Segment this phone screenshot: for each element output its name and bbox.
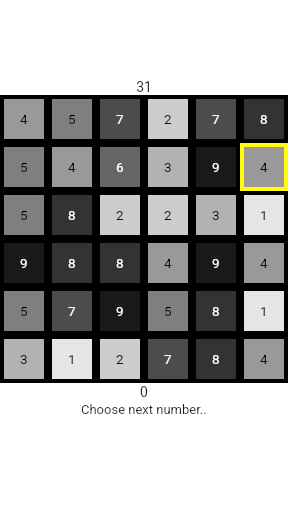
staticText: 9 [212, 159, 220, 175]
staticText: 7 [68, 303, 76, 319]
staticText: 7 [212, 111, 220, 127]
button[interactable]: 2 [144, 191, 192, 239]
staticText: 4 [260, 351, 268, 367]
staticText: 3 [212, 207, 220, 223]
button[interactable]: 2 [144, 95, 192, 143]
button[interactable]: 5 [48, 95, 96, 143]
button[interactable]: 1 [240, 191, 288, 239]
button[interactable]: 2 [96, 191, 144, 239]
button[interactable]: 8 [48, 191, 96, 239]
staticText: 4 [164, 255, 172, 271]
staticText: 2 [164, 111, 172, 127]
staticText: 8 [260, 111, 268, 127]
staticText: 2 [116, 351, 124, 367]
button[interactable]: 5 [144, 287, 192, 335]
staticText: 5 [164, 303, 172, 319]
button[interactable]: 4 [48, 143, 96, 191]
staticText: 2 [116, 207, 124, 223]
button[interactable]: 7 [96, 95, 144, 143]
staticText: 31 [136, 79, 152, 95]
staticText: 4 [20, 111, 28, 127]
button[interactable]: 8 [192, 335, 240, 383]
button[interactable]: 8 [48, 239, 96, 287]
staticText: 3 [164, 159, 172, 175]
staticText: 9 [212, 255, 220, 271]
button[interactable]: 7 [144, 335, 192, 383]
staticText: 6 [116, 159, 124, 175]
staticText: 5 [20, 159, 28, 175]
button[interactable]: 9 [192, 239, 240, 287]
staticText: 9 [116, 303, 124, 319]
button[interactable]: 5 [0, 143, 48, 191]
button[interactable]: 7 [192, 95, 240, 143]
staticText: 8 [212, 303, 220, 319]
button[interactable]: 1 [48, 335, 96, 383]
staticText: 7 [164, 351, 172, 367]
staticText: 5 [20, 207, 28, 223]
staticText: 2 [164, 207, 172, 223]
staticText: 9 [20, 255, 28, 271]
staticText: 8 [116, 255, 124, 271]
staticText: 5 [20, 303, 28, 319]
staticText: 4 [260, 159, 268, 175]
staticText: 4 [260, 255, 268, 271]
staticText: 1 [260, 303, 268, 319]
button[interactable]: 3 [192, 191, 240, 239]
button[interactable]: 4 [240, 239, 288, 287]
button[interactable]: 3 [0, 335, 48, 383]
button[interactable]: 7 [48, 287, 96, 335]
button[interactable]: 9 [0, 239, 48, 287]
button[interactable]: 3 [144, 143, 192, 191]
button[interactable]: 5 [0, 191, 48, 239]
button[interactable]: 6 [96, 143, 144, 191]
staticText: 3 [20, 351, 28, 367]
staticText: 4 [68, 159, 76, 175]
staticText: 8 [68, 207, 76, 223]
staticText: 8 [212, 351, 220, 367]
button[interactable]: 5 [0, 287, 48, 335]
button[interactable]: 4 [240, 143, 288, 191]
button[interactable]: 4 [240, 335, 288, 383]
button[interactable]: 1 [240, 287, 288, 335]
staticText: 7 [116, 111, 124, 127]
button[interactable]: 8 [96, 239, 144, 287]
button[interactable]: 9 [192, 143, 240, 191]
button[interactable]: 4 [0, 95, 48, 143]
button[interactable]: 4 [144, 239, 192, 287]
button[interactable]: 2 [96, 335, 144, 383]
staticText: 0 [140, 384, 148, 400]
staticText: 1 [260, 207, 268, 223]
staticText: 5 [68, 111, 76, 127]
staticText: 1 [68, 351, 76, 367]
button[interactable]: 8 [192, 287, 240, 335]
staticText: Choose next number.. [81, 402, 207, 417]
button[interactable]: 8 [240, 95, 288, 143]
staticText: 8 [68, 255, 76, 271]
button[interactable]: 9 [96, 287, 144, 335]
